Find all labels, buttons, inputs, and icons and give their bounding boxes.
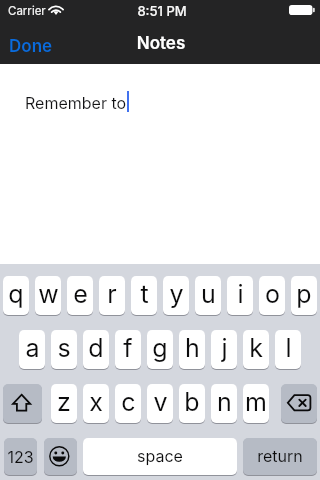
button[interactable]: d bbox=[83, 330, 109, 369]
staticText: z bbox=[57, 387, 71, 417]
staticText: 8:51 PM bbox=[2, 3, 320, 19]
staticText: o bbox=[265, 279, 280, 309]
staticText: h bbox=[185, 333, 200, 363]
staticText: j bbox=[221, 333, 228, 363]
staticText: y bbox=[169, 279, 184, 309]
staticText: space bbox=[137, 446, 183, 465]
button[interactable]: 123 bbox=[4, 438, 37, 475]
staticText: u bbox=[201, 279, 216, 309]
button[interactable]: s bbox=[51, 330, 77, 369]
staticText: return bbox=[257, 446, 303, 465]
staticText: m bbox=[245, 387, 267, 417]
button[interactable]: k bbox=[243, 330, 269, 369]
button[interactable]: p bbox=[291, 276, 317, 315]
staticText: Carrier bbox=[8, 4, 46, 18]
staticText: s bbox=[57, 333, 71, 363]
staticText: a bbox=[25, 333, 40, 363]
staticText: f bbox=[123, 333, 133, 363]
staticText: i bbox=[237, 279, 244, 309]
button[interactable]: x bbox=[83, 384, 109, 423]
button[interactable]: j bbox=[211, 330, 237, 369]
button[interactable]: n bbox=[211, 384, 237, 423]
staticText: e bbox=[73, 279, 88, 309]
button[interactable]: l bbox=[275, 330, 301, 369]
staticText: c bbox=[121, 387, 136, 417]
staticText: n bbox=[217, 387, 232, 417]
staticText: Done bbox=[9, 36, 53, 57]
button[interactable]: q bbox=[3, 276, 29, 315]
staticText: g bbox=[152, 333, 168, 363]
button[interactable]: y bbox=[163, 276, 189, 315]
button[interactable]: Remember to bbox=[0, 64, 320, 264]
button[interactable]: space bbox=[83, 438, 237, 475]
button[interactable]: f bbox=[115, 330, 141, 369]
staticText: v bbox=[153, 387, 168, 417]
staticText: w bbox=[38, 279, 59, 309]
button[interactable]: c bbox=[115, 384, 141, 423]
button[interactable]: g bbox=[147, 330, 173, 369]
button[interactable]: Backspace bbox=[281, 384, 317, 423]
button[interactable]: return bbox=[243, 438, 317, 475]
button[interactable]: t bbox=[131, 276, 157, 315]
button[interactable]: i bbox=[227, 276, 253, 315]
staticText: b bbox=[184, 387, 200, 417]
button[interactable]: o bbox=[259, 276, 285, 315]
staticText: Remember to bbox=[25, 93, 127, 112]
button[interactable]: Shift bbox=[3, 384, 42, 423]
button[interactable]: w bbox=[35, 276, 61, 315]
staticText: Notes bbox=[1, 33, 320, 54]
staticText: x bbox=[89, 387, 103, 417]
staticText: 123 bbox=[7, 447, 34, 466]
staticText: t bbox=[140, 279, 149, 309]
staticText: k bbox=[249, 333, 263, 363]
staticText: l bbox=[285, 333, 292, 363]
staticText: d bbox=[88, 333, 104, 363]
button[interactable]: h bbox=[179, 330, 205, 369]
staticText: p bbox=[296, 279, 312, 309]
button[interactable]: v bbox=[147, 384, 173, 423]
staticText: q bbox=[8, 279, 24, 309]
button[interactable]: e bbox=[67, 276, 93, 315]
button[interactable]: r bbox=[99, 276, 125, 315]
button[interactable]: a bbox=[19, 330, 45, 369]
button[interactable]: b bbox=[179, 384, 205, 423]
staticText: r bbox=[107, 279, 117, 309]
button[interactable]: m bbox=[243, 384, 269, 423]
button[interactable]: u bbox=[195, 276, 221, 315]
button[interactable]: Done bbox=[4, 31, 58, 61]
button[interactable]: Emoji bbox=[44, 438, 77, 475]
button[interactable]: z bbox=[51, 384, 77, 423]
